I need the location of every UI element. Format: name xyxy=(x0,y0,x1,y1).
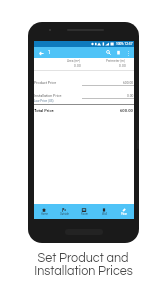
button[interactable]: Back xyxy=(37,49,45,57)
staticText: Perimeter (m) xyxy=(106,59,126,63)
staticText: Room xyxy=(81,213,88,216)
button[interactable]: Wall xyxy=(94,204,114,219)
staticText: 0.00 xyxy=(74,64,81,68)
button[interactable]: Home xyxy=(34,204,54,219)
staticText: Home xyxy=(41,213,48,216)
staticText: Outside xyxy=(60,213,69,216)
button[interactable]: Room xyxy=(74,204,94,219)
staticText: 100% 12:57 xyxy=(116,42,133,46)
staticText: Installation Prices xyxy=(34,265,133,278)
staticText: 0.00 xyxy=(119,64,126,68)
staticText: Total Price xyxy=(34,108,54,113)
staticText: Low Price (US) xyxy=(34,99,54,103)
staticText: 600.00 xyxy=(123,81,134,85)
button[interactable]: Delete xyxy=(114,48,123,57)
button[interactable]: Price xyxy=(114,204,134,219)
staticText: 0.00 xyxy=(127,94,134,98)
button[interactable]: More options xyxy=(124,49,132,57)
staticText: 1 xyxy=(48,50,51,55)
staticText: 600.00 xyxy=(120,108,133,113)
staticText: Price xyxy=(121,213,127,216)
button[interactable]: Search xyxy=(104,48,113,57)
button[interactable]: Outside xyxy=(54,204,74,219)
staticText: Set Product and xyxy=(37,252,129,265)
staticText: Area (m²) xyxy=(67,59,81,63)
staticText: Product Price xyxy=(34,81,57,85)
staticText: Installation Price xyxy=(34,94,62,98)
staticText: Wall xyxy=(102,213,107,216)
